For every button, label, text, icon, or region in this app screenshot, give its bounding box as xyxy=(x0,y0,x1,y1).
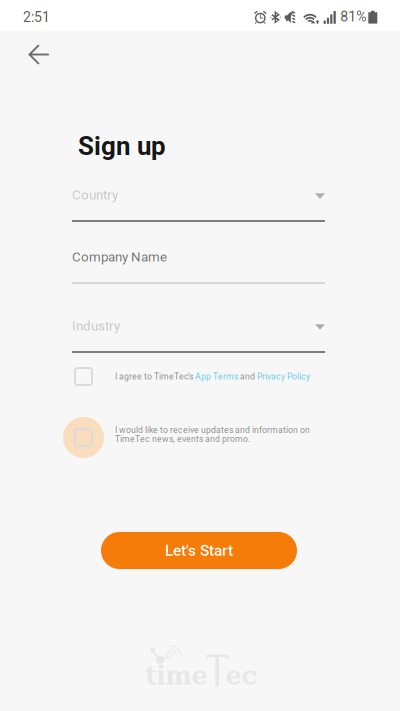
staticText: Industry xyxy=(72,318,120,334)
staticText: 2:51 xyxy=(23,9,50,26)
staticText: 81% xyxy=(340,8,366,25)
staticText: Let's Start xyxy=(165,541,233,559)
button[interactable]: I would like to receive updates and info… xyxy=(63,417,319,458)
staticText: I agree to TimeTec's App Terms and Priva… xyxy=(115,371,310,382)
button[interactable]: I agree to TimeTec's App Terms and Priva… xyxy=(63,356,319,397)
staticText: time xyxy=(145,659,207,691)
button[interactable]: Let's Start xyxy=(101,532,297,569)
staticText: Country xyxy=(72,187,118,203)
staticText: I would like to receive updates and info… xyxy=(115,425,310,444)
staticText: Company Name xyxy=(72,249,167,265)
button[interactable]: Back xyxy=(17,32,61,76)
staticText: ec xyxy=(225,659,257,691)
staticText: Sign up xyxy=(78,131,166,161)
